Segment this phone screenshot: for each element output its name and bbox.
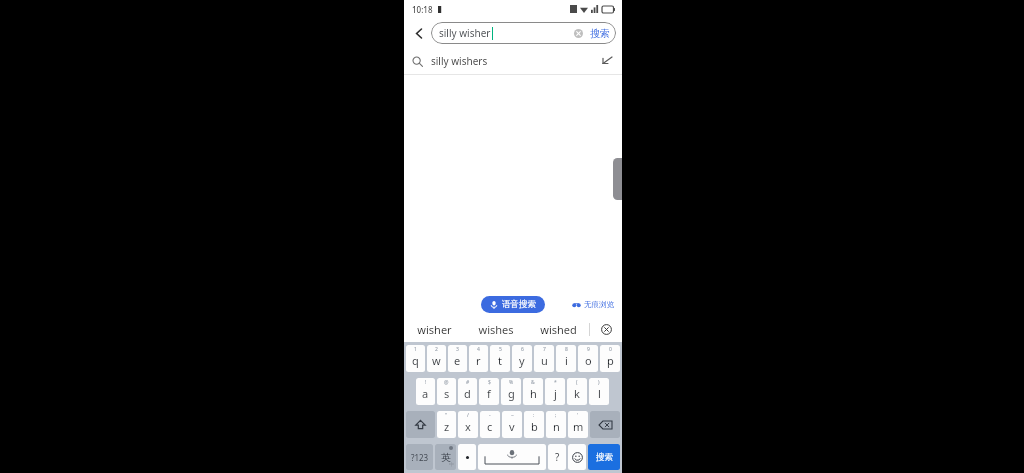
staticText: g (508, 386, 515, 401)
button[interactable] (458, 444, 476, 470)
staticText: # (466, 379, 470, 386)
button[interactable]: @ (437, 378, 456, 405)
staticText: * (554, 379, 557, 386)
staticText: wishes (478, 322, 514, 337)
staticText: $ (488, 379, 491, 386)
staticText: c (487, 419, 493, 434)
button[interactable]: ) (589, 378, 609, 405)
staticText: r (476, 353, 481, 368)
staticText: wished (540, 322, 577, 337)
staticText: w (432, 353, 441, 368)
button[interactable]: Shift (406, 411, 435, 438)
button[interactable]: Fill query (600, 54, 614, 68)
button[interactable]: silly wishers (404, 48, 622, 74)
button[interactable]: 9 (578, 345, 598, 372)
button[interactable]: Clear (572, 27, 584, 39)
button[interactable]: 无痕浏览 (572, 300, 614, 309)
button[interactable]: ! (416, 378, 435, 405)
staticText: wisher (417, 322, 452, 337)
staticText: a (422, 386, 429, 401)
button[interactable]: wishes (465, 317, 527, 342)
button[interactable]: $ (479, 378, 499, 405)
staticText: ) (598, 379, 600, 386)
staticText: t (498, 353, 502, 368)
button[interactable]: 5 (490, 345, 510, 372)
button[interactable]: ' (568, 411, 588, 438)
staticText: m (573, 419, 584, 434)
staticText: 9 (587, 346, 590, 353)
staticText: s (444, 386, 450, 401)
staticText: & (531, 379, 535, 386)
staticText: silly wisher (439, 26, 491, 40)
button[interactable]: 语音搜索 (481, 296, 545, 313)
staticText: 英 (441, 451, 451, 464)
button[interactable]: ? (548, 444, 566, 470)
button[interactable]: Backspace (590, 411, 620, 438)
staticText: 0 (609, 346, 612, 353)
button[interactable]: : (524, 411, 544, 438)
staticText: 3 (456, 346, 459, 353)
staticText: : (533, 412, 535, 419)
staticText: ? (555, 450, 560, 464)
staticText: n (553, 419, 560, 434)
staticText: 7 (543, 346, 546, 353)
button[interactable]: 1 (406, 345, 425, 372)
button[interactable]: Switch language (435, 444, 456, 470)
staticText: 无痕浏览 (584, 300, 614, 309)
button[interactable]: 4 (469, 345, 488, 372)
button[interactable]: silly wisher (431, 22, 616, 44)
staticText: q (412, 353, 419, 368)
staticText: " (445, 412, 448, 419)
button[interactable]: ; (546, 411, 566, 438)
staticText: 5 (499, 346, 502, 353)
button[interactable]: Close suggestions (590, 317, 622, 342)
button[interactable]: 0 (600, 345, 620, 372)
staticText: i (565, 353, 568, 368)
button[interactable]: " (437, 411, 456, 438)
button[interactable]: Back (410, 24, 428, 42)
staticText: 4 (477, 346, 480, 353)
staticText: ( (576, 379, 578, 386)
button[interactable]: & (523, 378, 543, 405)
staticText: z (444, 419, 450, 434)
staticText: y (519, 353, 525, 368)
button[interactable]: ?123 (406, 444, 433, 470)
staticText: @ (444, 379, 449, 386)
staticText: u (541, 353, 548, 368)
button[interactable]: wished (527, 317, 589, 342)
staticText: p (607, 353, 614, 368)
staticText: ! (425, 379, 427, 386)
button[interactable]: 6 (512, 345, 532, 372)
staticText: b (531, 419, 538, 434)
button[interactable]: 搜索 (588, 444, 620, 470)
staticText: 6 (521, 346, 524, 353)
staticText: v (509, 419, 515, 434)
staticText: l (598, 386, 601, 401)
button[interactable]: 搜索 (588, 27, 612, 40)
button[interactable]: Space (478, 444, 546, 470)
button[interactable]: % (501, 378, 521, 405)
staticText: e (454, 353, 461, 368)
staticText: 搜索 (596, 452, 613, 463)
button[interactable]: - (480, 411, 500, 438)
staticText: f (487, 386, 491, 401)
button[interactable]: # (458, 378, 477, 405)
button[interactable]: 8 (556, 345, 576, 372)
staticText: ?123 (411, 452, 429, 463)
staticText: ; (555, 412, 557, 419)
staticText: % (509, 379, 514, 386)
button[interactable]: ( (567, 378, 587, 405)
staticText: ' (577, 412, 579, 419)
staticText: 8 (565, 346, 568, 353)
button[interactable]: 7 (534, 345, 554, 372)
button[interactable]: / (458, 411, 478, 438)
staticText: k (574, 386, 580, 401)
staticText: 2 (435, 346, 438, 353)
button[interactable]: 2 (427, 345, 446, 372)
button[interactable]: Emoji (568, 444, 586, 470)
button[interactable]: wisher (404, 317, 465, 342)
staticText: 10:18 (412, 4, 433, 15)
button[interactable]: * (545, 378, 565, 405)
button[interactable]: ~ (502, 411, 522, 438)
button[interactable]: 3 (448, 345, 467, 372)
